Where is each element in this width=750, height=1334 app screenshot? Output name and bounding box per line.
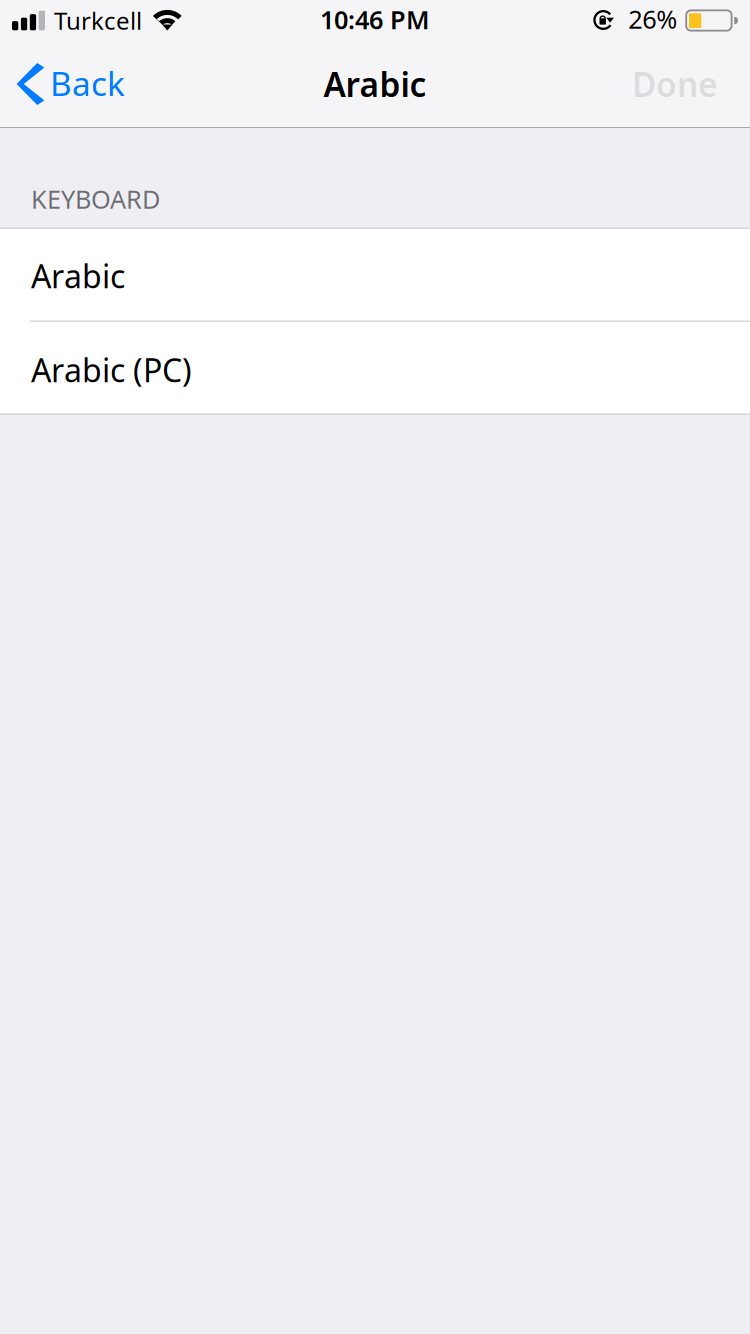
staticText: Arabic (PC): [31, 349, 192, 391]
staticText: Done: [632, 62, 718, 106]
staticText: KEYBOARD: [31, 182, 160, 216]
button[interactable]: Back: [0, 44, 139, 128]
staticText: Arabic: [31, 255, 125, 297]
staticText: Back: [50, 61, 125, 105]
staticText: Arabic: [323, 62, 426, 106]
staticText: Turkcell: [54, 5, 142, 36]
staticText: 10:46 PM: [320, 3, 430, 36]
button[interactable]: Arabic: [0, 228, 750, 321]
staticText: 26%: [628, 2, 677, 36]
button[interactable]: Done: [614, 44, 750, 128]
button[interactable]: Arabic (PC): [0, 322, 750, 415]
